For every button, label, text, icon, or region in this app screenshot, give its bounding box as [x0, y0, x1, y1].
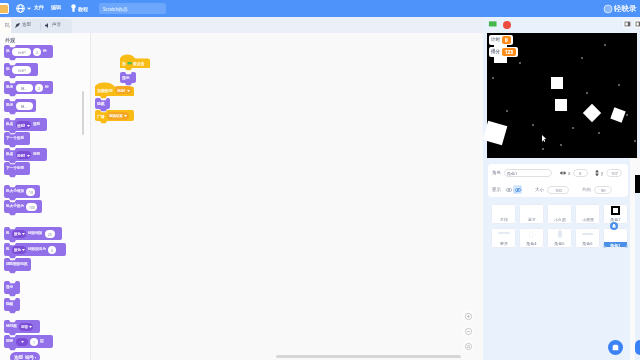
button[interactable]: 0	[573, 169, 588, 177]
staticText: 角色1	[507, 171, 518, 176]
button[interactable]: Logo	[0, 3, 9, 14]
button[interactable]: 小火箭	[547, 204, 572, 224]
staticText: 嗯…	[21, 104, 28, 109]
button[interactable]: 小星星	[575, 204, 600, 224]
staticText: 游戏结束	[109, 114, 123, 118]
button[interactable]: 思考	[4, 81, 53, 94]
button[interactable]: 前移	[4, 335, 53, 348]
staticText: 特效设定为	[28, 247, 46, 252]
button[interactable]: Show	[504, 185, 513, 194]
button[interactable]: Zoom out	[462, 325, 474, 337]
button[interactable]: 蓝方	[519, 204, 544, 224]
button[interactable]: 清除图形特效	[4, 258, 31, 271]
staticText: 换成	[6, 122, 14, 127]
staticText: 角色5	[554, 241, 565, 246]
button[interactable]: 方块	[491, 204, 516, 224]
button[interactable]: 文件	[34, 4, 44, 10]
staticText: 码	[5, 23, 10, 29]
button[interactable]: 换成	[4, 148, 47, 161]
button[interactable]: Reset zoom	[462, 340, 474, 352]
button[interactable]: Scratch作品	[99, 3, 166, 14]
button[interactable]: Zoom in	[462, 310, 474, 322]
button[interactable]: 隐藏	[4, 298, 20, 311]
button[interactable]: Language	[16, 4, 31, 13]
button[interactable]: 换成	[4, 118, 47, 131]
button[interactable]: 说	[4, 63, 38, 76]
button[interactable]: 100	[547, 186, 569, 194]
staticText: 方向	[582, 187, 591, 193]
staticText: 换成	[6, 152, 14, 157]
staticText: 得分	[491, 49, 500, 55]
staticText: 你好!	[18, 50, 26, 55]
button[interactable]: 教程	[71, 4, 88, 13]
staticText: 层	[40, 339, 44, 344]
staticText: 隐藏	[97, 101, 105, 106]
button[interactable]: 码	[0, 18, 11, 33]
button[interactable]: 当接收到	[95, 81, 134, 96]
button[interactable]: 角色1	[504, 169, 552, 177]
staticText: 编辑	[51, 4, 61, 10]
staticText: 教程	[78, 6, 88, 12]
button[interactable]: 角色6	[575, 228, 600, 248]
button[interactable]: 思考	[4, 99, 36, 112]
button[interactable]: Small stage	[623, 20, 631, 28]
staticText: 你好!	[18, 68, 26, 73]
button[interactable]: 下一个造型	[4, 132, 30, 145]
staticText: 0	[579, 171, 582, 176]
staticText: 背景1	[17, 153, 26, 158]
button[interactable]: Hide	[513, 185, 522, 194]
staticText: 将	[6, 231, 10, 236]
staticText: 方块	[500, 217, 508, 222]
button[interactable]: 当	[120, 53, 150, 68]
staticText: 颜色	[14, 248, 21, 252]
staticText: 角色4	[526, 241, 537, 246]
button[interactable]: 将	[4, 243, 66, 256]
button[interactable]: 编辑	[51, 4, 61, 10]
staticText: 嗯…	[21, 86, 28, 91]
button[interactable]: 显示	[4, 281, 20, 294]
staticText: 说	[6, 67, 10, 72]
staticText: 广播	[97, 114, 105, 119]
button[interactable]: 轻映录	[604, 4, 637, 13]
staticText: 思考	[6, 85, 14, 90]
staticText: 说	[6, 49, 10, 54]
button[interactable]: 下一个背景	[4, 162, 30, 175]
staticText: 90	[601, 188, 606, 193]
button[interactable]: Go	[488, 20, 497, 29]
button[interactable]: 将	[4, 227, 62, 240]
button[interactable]: 将大小增加	[4, 185, 40, 198]
button[interactable]: 隐藏	[95, 98, 110, 109]
button[interactable]: Delete sprite	[610, 222, 618, 230]
button[interactable]: 造型	[10, 352, 40, 360]
staticText: 消息1	[117, 88, 126, 93]
button[interactable]: 107	[606, 169, 622, 177]
button[interactable]: 造型	[15, 22, 31, 28]
button[interactable]: 90	[594, 186, 612, 194]
button[interactable]: 将大小设为	[4, 200, 42, 213]
button[interactable]: 声音	[45, 22, 61, 28]
button[interactable]: 要开	[491, 228, 516, 248]
staticText: x	[568, 170, 571, 176]
button[interactable]: 移到最	[4, 320, 40, 333]
button[interactable]: 广播	[95, 110, 134, 121]
staticText: 2	[38, 86, 40, 91]
button[interactable]: 角色1	[603, 228, 628, 248]
staticText: 计时	[491, 37, 500, 43]
staticText: 将大小设为	[6, 204, 24, 209]
button[interactable]: Add sprite	[608, 340, 623, 355]
button[interactable]: Add sprite	[635, 340, 640, 355]
staticText: 显示	[6, 285, 14, 290]
button[interactable]: 角色7	[603, 204, 628, 224]
staticText: 下一个造型	[6, 136, 24, 141]
staticText: 角色7	[610, 217, 621, 222]
staticText: 10	[29, 190, 33, 195]
staticText: 秒	[45, 85, 49, 90]
button[interactable]: 角色4	[519, 228, 544, 248]
staticText: 特效增加	[28, 231, 43, 236]
button[interactable]: 显示	[120, 72, 136, 83]
button[interactable]: 说	[4, 45, 53, 58]
staticText: 25	[48, 232, 52, 237]
button[interactable]: Large stage	[634, 20, 640, 28]
button[interactable]: 角色5	[547, 228, 572, 248]
button[interactable]: Stop	[503, 21, 511, 29]
